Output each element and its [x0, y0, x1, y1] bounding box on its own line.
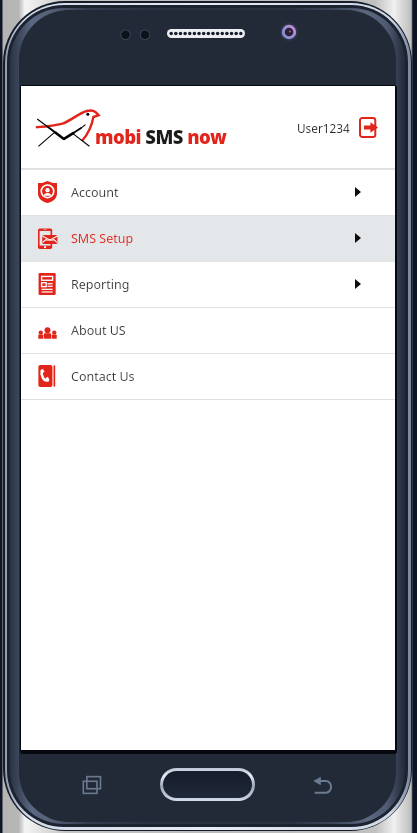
- button[interactable]: About US: [21, 307, 395, 353]
- button[interactable]: Home: [163, 771, 252, 798]
- button[interactable]: Contact Us: [21, 353, 395, 399]
- staticText: About US: [71, 322, 126, 339]
- staticText: User1234: [297, 120, 350, 136]
- staticText: Account: [71, 184, 119, 201]
- button[interactable]: Recent apps: [82, 774, 104, 796]
- button[interactable]: Reporting: [21, 261, 395, 307]
- staticText: SMS Setup: [71, 230, 134, 247]
- staticText: now: [183, 124, 227, 149]
- button[interactable]: SMS Setup: [21, 215, 395, 261]
- button[interactable]: Account: [21, 169, 395, 215]
- staticText: Reporting: [71, 276, 130, 293]
- staticText: SMS: [141, 124, 183, 149]
- button[interactable]: Back: [312, 774, 334, 796]
- staticText: Contact Us: [71, 368, 135, 385]
- button[interactable]: Logout: [359, 117, 378, 138]
- staticText: mobi: [95, 124, 141, 149]
